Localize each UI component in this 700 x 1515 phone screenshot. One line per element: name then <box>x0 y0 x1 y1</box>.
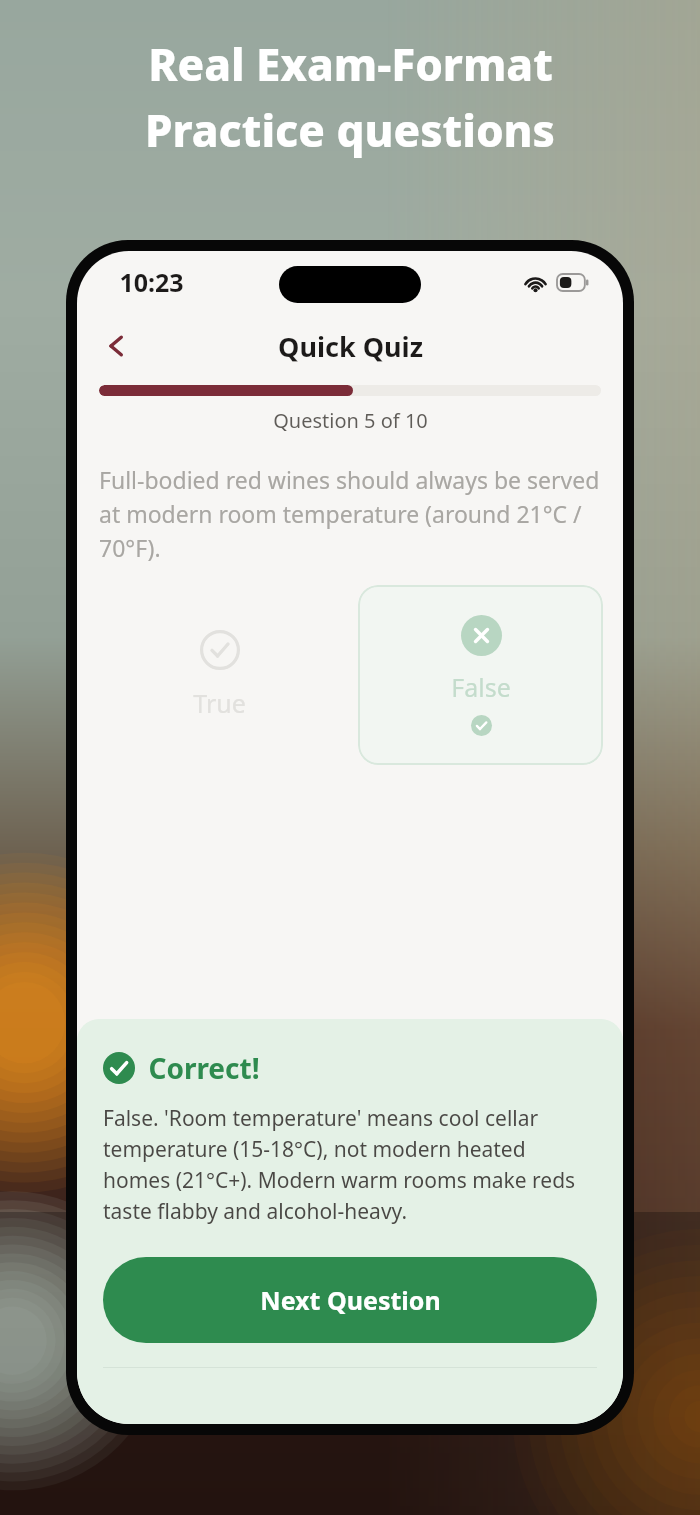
staticText: Real Exam-Format <box>148 34 553 94</box>
button[interactable]: Next Question <box>103 1257 597 1343</box>
staticText: False. 'Room temperature' means cool cel… <box>103 1104 597 1225</box>
staticText: Next Question <box>260 1283 441 1317</box>
staticText: Correct! <box>148 1049 260 1087</box>
staticText: False <box>451 670 511 704</box>
staticText: Full-bodied red wines should always be s… <box>99 464 601 563</box>
staticText: Question 5 of 10 <box>273 407 428 434</box>
button[interactable]: Back <box>89 321 143 371</box>
staticText: Quick Quiz <box>278 328 423 365</box>
staticText: True <box>193 686 246 720</box>
staticText: 10:23 <box>119 265 184 299</box>
staticText: Practice questions <box>145 100 555 160</box>
button[interactable]: False <box>358 585 603 765</box>
